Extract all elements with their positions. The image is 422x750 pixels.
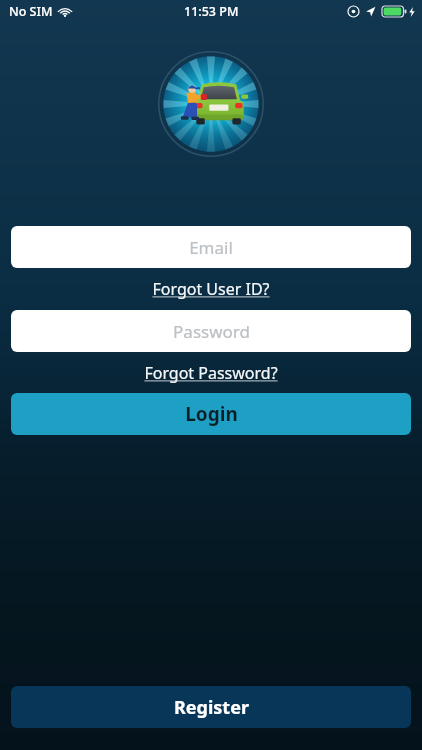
staticText: Password — [173, 320, 250, 343]
staticText: No SIM — [9, 3, 53, 20]
button[interactable]: Login — [11, 393, 411, 435]
staticText: 11:53 PM — [184, 3, 239, 20]
button[interactable]: Email — [11, 226, 411, 268]
staticText: Register — [174, 695, 249, 720]
button[interactable]: Forgot Password? — [138, 359, 284, 387]
button[interactable]: Password — [11, 310, 411, 352]
button[interactable]: Forgot User ID? — [146, 275, 276, 303]
staticText: Login — [185, 401, 238, 427]
staticText: Email — [189, 236, 233, 259]
button[interactable]: Register — [11, 686, 411, 728]
